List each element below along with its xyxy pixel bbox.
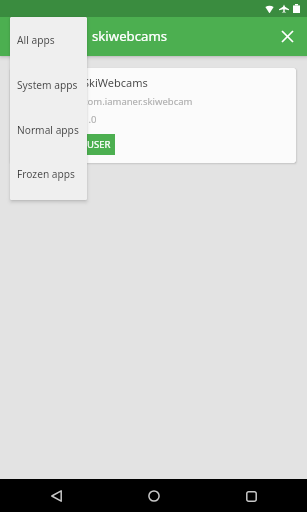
button[interactable]: Frozen apps	[10, 152, 87, 196]
staticText: SkiWebcams	[83, 75, 148, 90]
button[interactable]: All apps	[10, 17, 87, 62]
staticText: System apps	[17, 78, 78, 92]
staticText: Frozen apps	[17, 167, 75, 181]
staticText: All apps	[17, 33, 55, 47]
button[interactable]: Home	[138, 480, 170, 512]
staticText: com.iamaner.skiwebcam	[83, 95, 193, 108]
button[interactable]: Back	[40, 480, 72, 512]
button[interactable]: Normal apps	[10, 107, 87, 152]
staticText: skiwebcams	[92, 27, 168, 45]
button[interactable]: System apps	[10, 62, 87, 107]
button[interactable]: Clear search	[275, 24, 299, 48]
staticText: Normal apps	[17, 123, 79, 137]
button[interactable]: SkiWebcams	[10, 68, 296, 163]
staticText: USER	[87, 138, 111, 151]
button[interactable]: Recents	[235, 480, 267, 512]
staticText: 1.0	[83, 113, 97, 126]
